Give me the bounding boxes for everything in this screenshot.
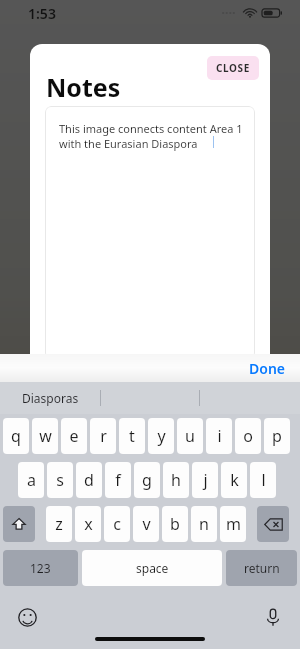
staticText: w: [39, 425, 52, 447]
button[interactable]: z: [46, 506, 72, 542]
staticText: Done: [249, 359, 286, 378]
staticText: u: [185, 425, 195, 447]
button[interactable]: Emoji: [14, 604, 40, 630]
button[interactable]: Shift: [3, 506, 35, 542]
button[interactable]: g: [134, 462, 160, 498]
staticText: p: [272, 425, 282, 447]
button[interactable]: a: [18, 462, 44, 498]
button[interactable]: h: [163, 462, 189, 498]
staticText: r: [100, 425, 107, 447]
staticText: l: [261, 469, 266, 491]
staticText: return: [244, 560, 280, 576]
button[interactable]: w: [32, 418, 58, 454]
staticText: q: [11, 425, 21, 447]
staticText: y: [157, 425, 166, 447]
button[interactable]: c: [104, 506, 130, 542]
staticText: Diasporas: [22, 390, 79, 406]
button[interactable]: Done: [235, 355, 300, 382]
staticText: a: [27, 469, 36, 491]
staticText: This image connects content Area 1 with …: [59, 121, 244, 151]
button[interactable]: 123: [3, 550, 78, 586]
button[interactable]: e: [61, 418, 87, 454]
button[interactable]: b: [162, 506, 188, 542]
button[interactable]: u: [177, 418, 203, 454]
staticText: s: [56, 469, 64, 491]
staticText: i: [217, 425, 222, 447]
staticText: 123: [30, 560, 51, 576]
button[interactable]: p: [264, 418, 290, 454]
staticText: h: [171, 469, 181, 491]
staticText: b: [170, 513, 180, 535]
button[interactable]: s: [47, 462, 73, 498]
staticText: CLOSE: [216, 61, 250, 75]
staticText: g: [142, 469, 152, 491]
staticText: j: [203, 469, 208, 491]
button[interactable]: k: [221, 462, 247, 498]
button[interactable]: This image connects content Area 1 with …: [45, 106, 255, 359]
staticText: v: [142, 513, 151, 535]
staticText: t: [129, 425, 135, 447]
staticText: space: [136, 560, 169, 576]
staticText: n: [199, 513, 209, 535]
button[interactable]: y: [148, 418, 174, 454]
button[interactable]: return: [226, 550, 297, 586]
staticText: x: [84, 513, 93, 535]
button[interactable]: v: [133, 506, 159, 542]
button[interactable]: j: [192, 462, 218, 498]
button[interactable]: Diasporas: [0, 382, 100, 414]
button[interactable]: r: [90, 418, 116, 454]
button[interactable]: f: [105, 462, 131, 498]
button[interactable]: n: [191, 506, 217, 542]
button[interactable]: o: [235, 418, 261, 454]
button[interactable]: Backspace: [257, 506, 289, 542]
staticText: z: [55, 513, 63, 535]
button[interactable]: m: [220, 506, 246, 542]
button[interactable]: q: [3, 418, 29, 454]
staticText: k: [230, 469, 239, 491]
button[interactable]: t: [119, 418, 145, 454]
staticText: c: [113, 513, 121, 535]
button[interactable]: l: [250, 462, 276, 498]
staticText: d: [84, 469, 94, 491]
button[interactable]: x: [75, 506, 101, 542]
staticText: o: [243, 425, 253, 447]
staticText: f: [115, 469, 121, 491]
button[interactable]: d: [76, 462, 102, 498]
button[interactable]: Dictation: [260, 604, 286, 630]
button[interactable]: i: [206, 418, 232, 454]
staticText: m: [226, 513, 241, 535]
staticText: Notes: [46, 70, 121, 104]
button[interactable]: CLOSE: [207, 56, 259, 80]
button[interactable]: space: [82, 550, 222, 586]
staticText: 1:53: [28, 4, 56, 23]
staticText: e: [69, 425, 79, 447]
